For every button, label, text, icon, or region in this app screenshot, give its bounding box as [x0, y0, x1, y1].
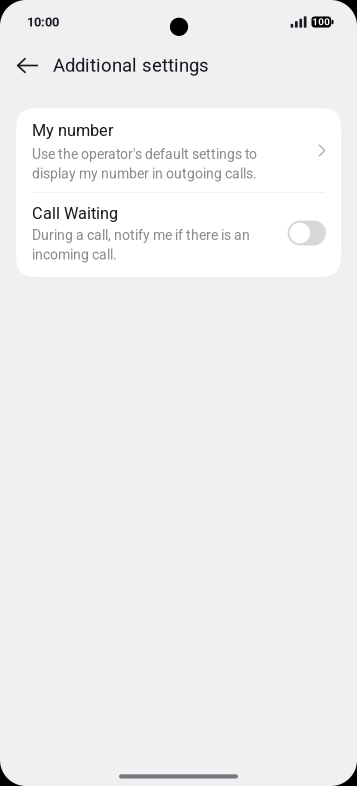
staticText: Use the operator's default settings to d…	[32, 146, 257, 182]
staticText: During a call, notify me if there is an …	[32, 227, 250, 263]
staticText: My number	[32, 121, 114, 140]
staticText: Additional settings	[53, 55, 209, 76]
staticText: 10:00	[27, 14, 59, 29]
staticText: 100	[312, 16, 330, 28]
button[interactable]: Call Waiting	[16, 193, 341, 277]
button[interactable]: My number	[16, 108, 341, 192]
staticText: Call Waiting	[32, 204, 118, 223]
button[interactable]: Back	[9, 45, 46, 85]
